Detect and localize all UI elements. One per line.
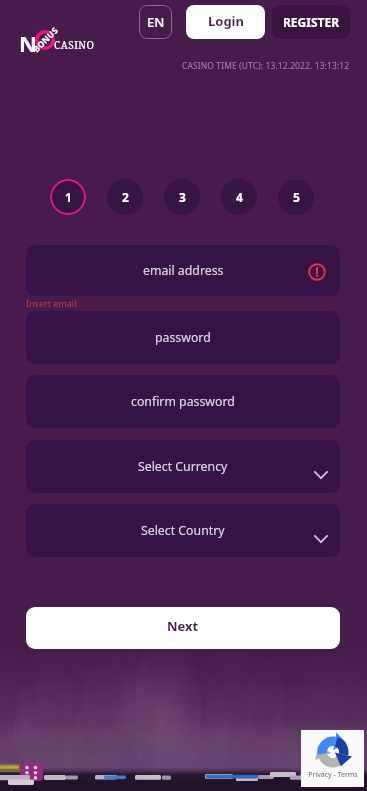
staticText: CASINO [54, 38, 95, 52]
staticText: 2 [122, 189, 129, 205]
staticText: Select Currency [138, 458, 228, 475]
staticText: Privacy - Terms [308, 770, 358, 780]
button[interactable]: Next [26, 607, 340, 649]
staticText: email address [143, 262, 224, 279]
staticText: Login [208, 12, 244, 30]
staticText: Next [167, 617, 199, 635]
staticText: 4 [236, 189, 243, 205]
button[interactable]: password [26, 311, 340, 364]
button[interactable]: confirm password [26, 375, 340, 428]
button[interactable]: 2 [107, 179, 143, 215]
staticText: password [155, 329, 211, 346]
button[interactable]: EN [139, 5, 172, 39]
button[interactable]: Select Country [26, 504, 340, 557]
staticText: CASINO TIME (UTC): 13.12.2022. 13:13:12 [182, 60, 350, 72]
button[interactable]: Login [186, 5, 265, 39]
staticText: EN [147, 13, 165, 31]
staticText: 5 [293, 189, 300, 205]
button[interactable]: Select Currency [26, 440, 340, 493]
staticText: 3 [179, 189, 186, 205]
staticText: Select Country [141, 522, 225, 539]
staticText: REGISTER [283, 14, 340, 30]
button[interactable]: 5 [278, 179, 314, 215]
staticText: Insert email [26, 297, 77, 309]
other: Error [308, 263, 326, 281]
button[interactable]: email address [26, 245, 340, 296]
button[interactable]: REGISTER [272, 5, 350, 39]
staticText: N [19, 28, 37, 58]
button[interactable]: 3 [164, 179, 200, 215]
staticText: BONUS [30, 25, 61, 55]
button[interactable]: reCAPTCHA privacy and terms [301, 730, 364, 787]
staticText: confirm password [131, 393, 235, 410]
button[interactable]: 4 [221, 179, 257, 215]
button[interactable]: 1 [50, 179, 86, 215]
staticText: 1 [65, 189, 72, 205]
